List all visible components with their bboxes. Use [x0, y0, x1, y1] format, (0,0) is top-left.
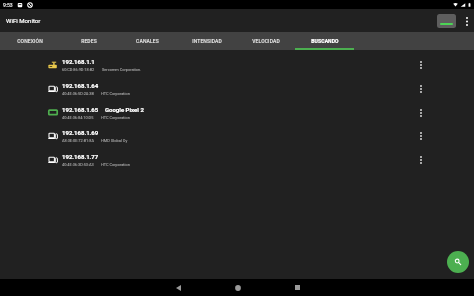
staticText: 60:CD:86:9D:18:B2 [62, 67, 95, 72]
button[interactable]: More options [461, 14, 472, 28]
button[interactable]: 192.168.1.65 [0, 101, 474, 125]
staticText: VELOCIDAD [252, 38, 280, 44]
button[interactable]: BUSCANDO [295, 32, 354, 50]
staticText: WiFi Monitor [6, 17, 41, 24]
staticText: REDES [81, 38, 97, 44]
staticText: 192.168.1.77 [62, 153, 99, 160]
staticText: 9:53 [3, 2, 13, 8]
button[interactable]: VELOCIDAD [236, 32, 295, 50]
button[interactable]: 192.168.1.64 [0, 77, 474, 101]
staticText: 192.168.1.69 [62, 129, 99, 136]
staticText: 192.168.1.65 [62, 106, 99, 113]
button[interactable]: Device options [414, 103, 428, 123]
staticText: HTC Corporation [101, 115, 130, 120]
staticText: HMD Global Oy [101, 138, 128, 143]
button[interactable]: Device options [414, 126, 428, 146]
staticText: CONEXIÓN [17, 38, 43, 44]
staticText: 192.168.1.64 [62, 82, 99, 89]
staticText: 192.168.1.1 [62, 58, 95, 65]
staticText: INTENSIDAD [192, 38, 222, 44]
staticText: HTC Corporation [101, 162, 130, 167]
staticText: 40:4E:36:5D:2A:3B [62, 91, 94, 96]
staticText: A8:3E:0E:72:B1:8A [62, 138, 94, 143]
staticText: Sercomm Corporation. [102, 67, 142, 72]
staticText: HTC Corporation [101, 91, 130, 96]
staticText: 40:4E:36:3D:53:A3 [62, 162, 94, 167]
button[interactable]: 192.168.1.77 [0, 148, 474, 172]
button[interactable]: 192.168.1.69 [0, 124, 474, 148]
staticText: 40:4E:36:84:10:D5 [62, 115, 94, 120]
button[interactable]: Home [223, 279, 253, 296]
button[interactable]: 192.168.1.1 [0, 53, 474, 77]
staticText: BUSCANDO [311, 38, 339, 44]
button[interactable]: INTENSIDAD [177, 32, 236, 50]
button[interactable]: Device options [414, 55, 428, 75]
staticText: CANALES [136, 38, 159, 44]
staticText: Google Pixel 2 [105, 106, 144, 113]
button[interactable]: Recents [282, 279, 312, 296]
button[interactable]: REDES [59, 32, 118, 50]
button[interactable]: CANALES [118, 32, 177, 50]
button[interactable]: CONEXIÓN [0, 32, 59, 50]
button[interactable]: Device options [414, 79, 428, 99]
button[interactable]: Device options [414, 150, 428, 170]
button[interactable]: Back [163, 279, 193, 296]
button[interactable]: Signal level [437, 14, 456, 28]
button[interactable]: Search [447, 251, 469, 273]
